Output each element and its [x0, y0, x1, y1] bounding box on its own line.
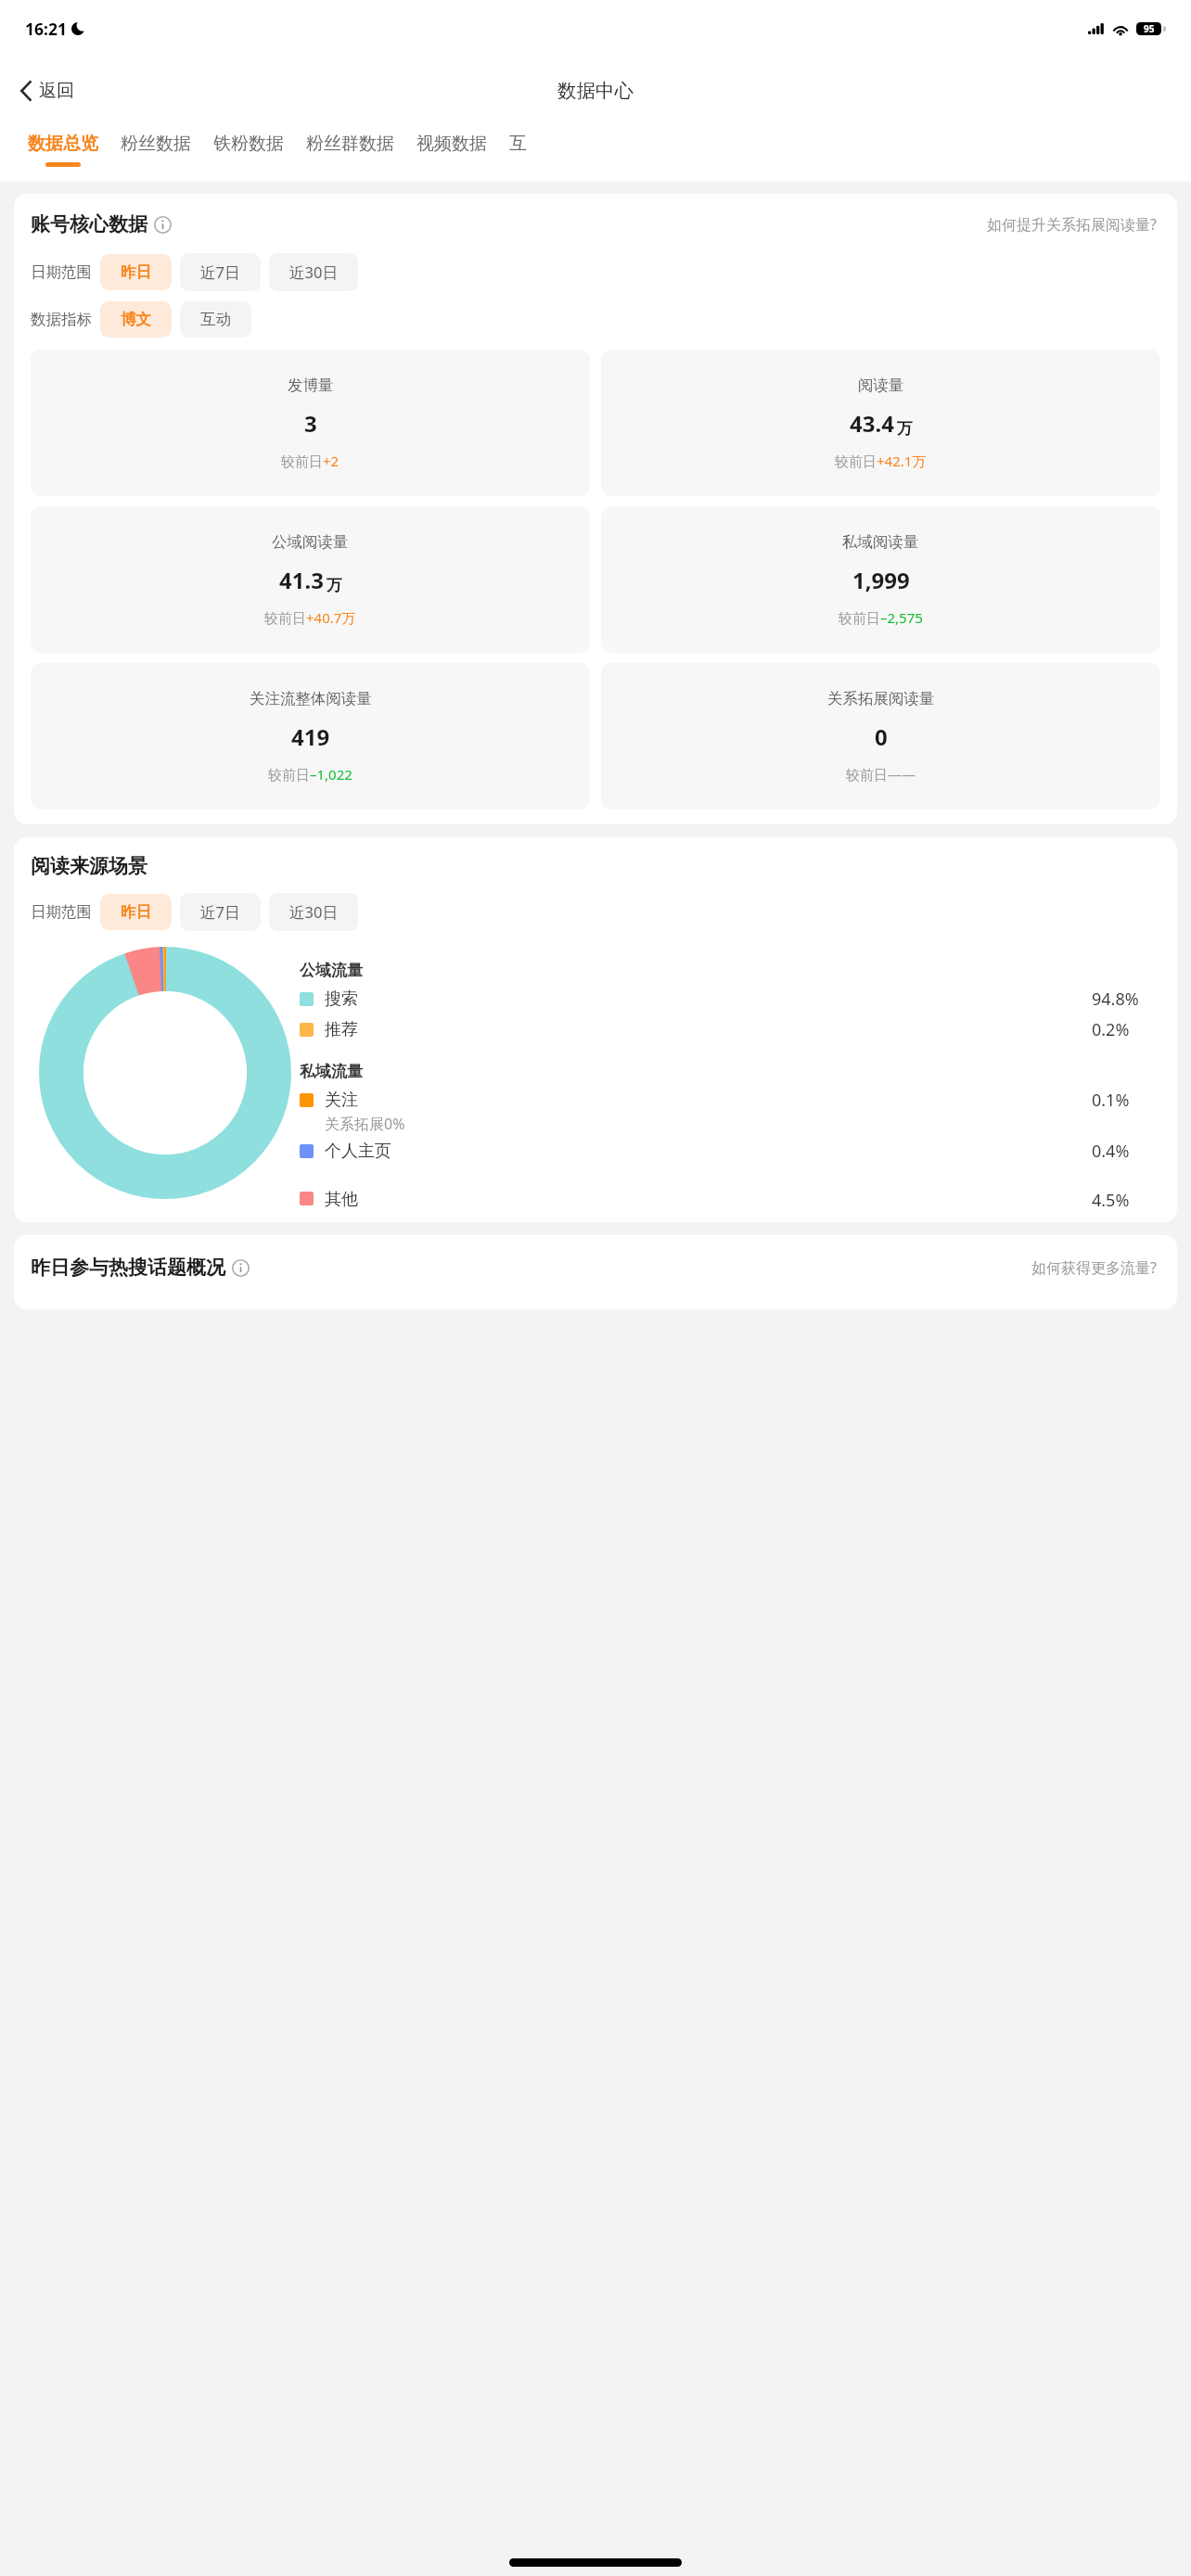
staticText: 万: [327, 576, 342, 595]
staticText: 其他: [325, 1189, 358, 1207]
button[interactable]: 公域阅读量: [31, 506, 590, 653]
staticText: 3: [304, 408, 317, 439]
staticText: 16:21: [25, 18, 67, 40]
staticText: 数据指标: [31, 310, 92, 329]
staticText: 94.8%: [1092, 988, 1160, 1011]
button[interactable]: 粉丝数据: [109, 124, 202, 162]
staticText: 关系拓展阅读量: [827, 689, 935, 708]
button[interactable]: 发博量: [31, 350, 590, 496]
button[interactable]: 昨日: [100, 254, 172, 290]
staticText: 较前日–1,022: [268, 765, 352, 784]
staticText: 粉丝群数据: [306, 133, 394, 155]
staticText: 43.4: [850, 408, 894, 439]
staticText: 账号核心数据: [31, 212, 147, 236]
other: 说明: [232, 1259, 250, 1277]
button[interactable]: 私域阅读量: [601, 506, 1160, 653]
button[interactable]: 互动: [180, 301, 251, 338]
staticText: 1,999: [852, 565, 910, 595]
staticText: 0.1%: [1092, 1089, 1160, 1112]
staticText: 419: [291, 721, 330, 752]
staticText: 较前日+2: [281, 452, 339, 470]
staticText: 关注: [325, 1090, 358, 1111]
staticText: 阅读来源场景: [31, 854, 147, 878]
button[interactable]: 个人主页: [300, 1140, 1160, 1163]
staticText: 返回: [39, 80, 74, 102]
staticText: 近7日: [200, 261, 240, 283]
button[interactable]: 近7日: [180, 253, 261, 291]
button[interactable]: 返回: [0, 72, 87, 109]
staticText: 公域阅读量: [272, 532, 349, 552]
button[interactable]: 其他: [300, 1189, 1160, 1207]
button[interactable]: 关注流整体阅读量: [31, 663, 590, 810]
staticText: 如何提升关系拓展阅读量?: [987, 214, 1157, 235]
staticText: 互: [509, 133, 527, 155]
staticText: 近30日: [289, 261, 338, 283]
staticText: 4.5%: [1092, 1189, 1160, 1207]
button[interactable]: 视频数据: [405, 124, 498, 162]
staticText: 较前日——: [846, 765, 916, 784]
button[interactable]: 昨日: [100, 894, 172, 930]
staticText: 近7日: [200, 901, 240, 923]
staticText: 日期范围: [31, 262, 92, 282]
button[interactable]: 铁粉数据: [202, 124, 295, 162]
staticText: 万: [897, 419, 913, 439]
button[interactable]: 如何提升关系拓展阅读量?: [983, 210, 1160, 238]
staticText: 个人主页: [325, 1141, 391, 1162]
button[interactable]: 博文: [100, 301, 172, 338]
staticText: 较前日+40.7万: [264, 608, 356, 627]
staticText: 0.2%: [1092, 1018, 1160, 1041]
staticText: 0: [875, 721, 888, 752]
button[interactable]: 近7日: [180, 893, 261, 931]
staticText: 41.3: [279, 565, 324, 595]
button[interactable]: 如何获得更多流量?: [1028, 1254, 1160, 1282]
staticText: 数据中心: [557, 79, 634, 103]
button[interactable]: 关系拓展阅读量: [601, 663, 1160, 810]
button[interactable]: 近30日: [269, 253, 358, 291]
staticText: 关系拓展0%: [325, 1114, 405, 1134]
staticText: 粉丝数据: [121, 133, 191, 155]
staticText: 较前日+42.1万: [835, 452, 927, 470]
button[interactable]: 搜索: [300, 988, 1160, 1011]
staticText: 公域流量: [300, 961, 363, 980]
button[interactable]: 互: [498, 124, 538, 162]
staticText: 昨日: [121, 262, 151, 282]
staticText: 如何获得更多流量?: [1031, 1257, 1157, 1278]
staticText: 视频数据: [416, 133, 487, 155]
staticText: 昨日参与热搜话题概况: [31, 1256, 225, 1280]
staticText: 昨日: [121, 902, 151, 922]
other: 说明: [154, 216, 172, 234]
button[interactable]: 近30日: [269, 893, 358, 931]
staticText: 0.4%: [1092, 1140, 1160, 1163]
button[interactable]: 推荐: [300, 1018, 1160, 1041]
staticText: 发博量: [288, 376, 334, 395]
button[interactable]: 数据总览: [17, 124, 109, 167]
staticText: 私域阅读量: [842, 532, 919, 552]
staticText: 95: [1144, 22, 1155, 35]
button[interactable]: 关注: [300, 1089, 1160, 1112]
staticText: 推荐: [325, 1019, 358, 1040]
staticText: 搜索: [325, 988, 358, 1010]
staticText: 关注流整体阅读量: [250, 689, 372, 708]
button[interactable]: 粉丝群数据: [295, 124, 405, 162]
staticText: 铁粉数据: [213, 133, 284, 155]
staticText: 博文: [121, 310, 151, 329]
button[interactable]: 阅读量: [601, 350, 1160, 496]
staticText: 数据总览: [28, 133, 98, 155]
staticText: 较前日–2,575: [839, 608, 923, 627]
staticText: 互动: [200, 310, 231, 329]
staticText: 近30日: [289, 901, 338, 923]
staticText: 阅读量: [858, 376, 904, 395]
staticText: 日期范围: [31, 902, 92, 922]
staticText: 私域流量: [300, 1062, 363, 1081]
